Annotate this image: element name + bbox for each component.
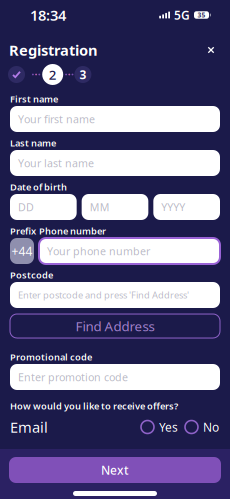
staticText: YYYY [161, 200, 185, 214]
staticText: Yes [159, 419, 178, 435]
staticText: Email [10, 417, 48, 437]
staticText: Enter postcode and press 'Find Address' [18, 289, 189, 301]
staticText: DD [18, 200, 34, 214]
staticText: 2 [49, 66, 57, 83]
staticText: No [203, 419, 219, 435]
staticText: Last name [10, 137, 56, 149]
staticText: Your last name [18, 156, 94, 170]
staticText: Your phone number [47, 244, 150, 258]
staticText: Find Address [75, 317, 154, 335]
staticText: Registration [9, 40, 98, 60]
staticText: First name [10, 93, 58, 105]
staticText: 35 [197, 11, 205, 19]
staticText: 3 [79, 66, 86, 82]
button[interactable]: Find Address [10, 314, 220, 338]
staticText: 5G [174, 7, 190, 23]
staticText: Postcode [10, 269, 53, 281]
staticText: Promotional code [10, 351, 92, 363]
button[interactable]: Yes [141, 418, 178, 436]
staticText: Next [101, 462, 129, 478]
staticText: Your first name [18, 112, 95, 126]
staticText: Date of birth [10, 181, 67, 193]
button[interactable]: No [185, 418, 219, 436]
button[interactable]: Close [201, 40, 221, 60]
staticText: How would you like to receive offers? [10, 400, 178, 412]
staticText: MM [90, 200, 110, 214]
staticText: Phone number [39, 225, 106, 237]
button[interactable]: Next [0, 457, 230, 483]
staticText: +44 [11, 243, 32, 259]
staticText: Enter promotion code [18, 370, 128, 384]
staticText: Prefix [10, 225, 36, 237]
staticText: 18:34 [30, 5, 66, 25]
